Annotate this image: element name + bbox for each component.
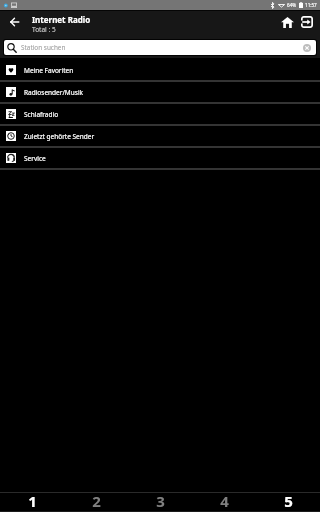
button[interactable]: 2 bbox=[64, 493, 128, 511]
staticText: Total : 5 bbox=[32, 25, 56, 34]
button[interactable]: Clear search bbox=[300, 41, 314, 55]
button[interactable]: Back bbox=[0, 11, 28, 37]
staticText: Radiosender/Musik bbox=[24, 88, 84, 97]
staticText: Zuletzt gehörte Sender bbox=[24, 132, 95, 141]
staticText: Station suchen bbox=[21, 43, 66, 52]
button[interactable]: Meine Favoriten bbox=[0, 60, 320, 82]
button[interactable]: Station suchen bbox=[4, 40, 316, 55]
button[interactable]: Zuletzt gehörte Sender bbox=[0, 126, 320, 148]
button[interactable]: 5 bbox=[256, 493, 320, 511]
staticText: 64% bbox=[287, 2, 297, 8]
staticText: Meine Favoriten bbox=[24, 66, 74, 75]
button[interactable]: 3 bbox=[128, 493, 192, 511]
staticText: 1 bbox=[28, 491, 37, 509]
staticText: 5 bbox=[284, 491, 293, 509]
button[interactable]: Home bbox=[271, 11, 294, 37]
staticText: 3 bbox=[156, 491, 165, 509]
button[interactable]: Radiosender/Musik bbox=[0, 82, 320, 104]
staticText: 4 bbox=[220, 491, 229, 509]
button[interactable]: 4 bbox=[192, 493, 256, 511]
staticText: Service bbox=[24, 154, 46, 163]
button[interactable]: 1 bbox=[0, 493, 64, 511]
staticText: Internet Radio bbox=[32, 14, 91, 25]
staticText: 11:57 bbox=[305, 2, 317, 8]
button[interactable]: Service bbox=[0, 148, 320, 170]
button[interactable]: Exit bbox=[294, 11, 320, 37]
staticText: 2 bbox=[92, 491, 101, 509]
button[interactable]: Schlafradio bbox=[0, 104, 320, 126]
staticText: Schlafradio bbox=[24, 110, 59, 119]
